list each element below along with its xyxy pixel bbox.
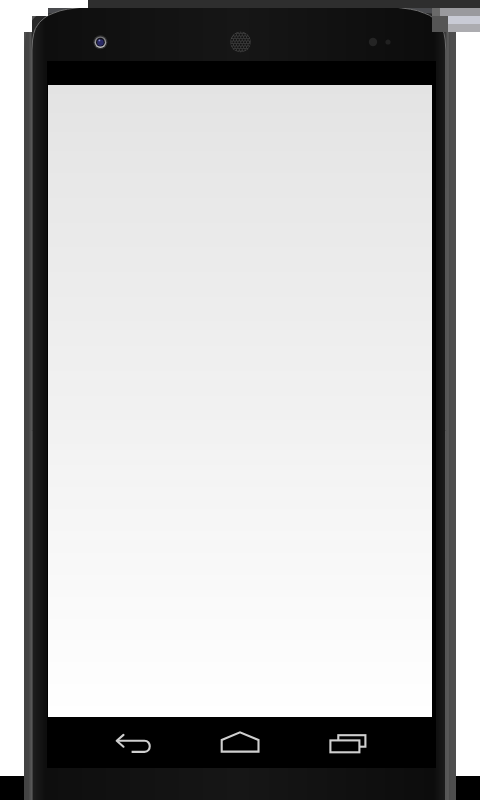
button[interactable]: Back	[100, 718, 168, 768]
button[interactable]: Recent apps	[314, 718, 382, 768]
button[interactable]: Home	[206, 718, 274, 768]
